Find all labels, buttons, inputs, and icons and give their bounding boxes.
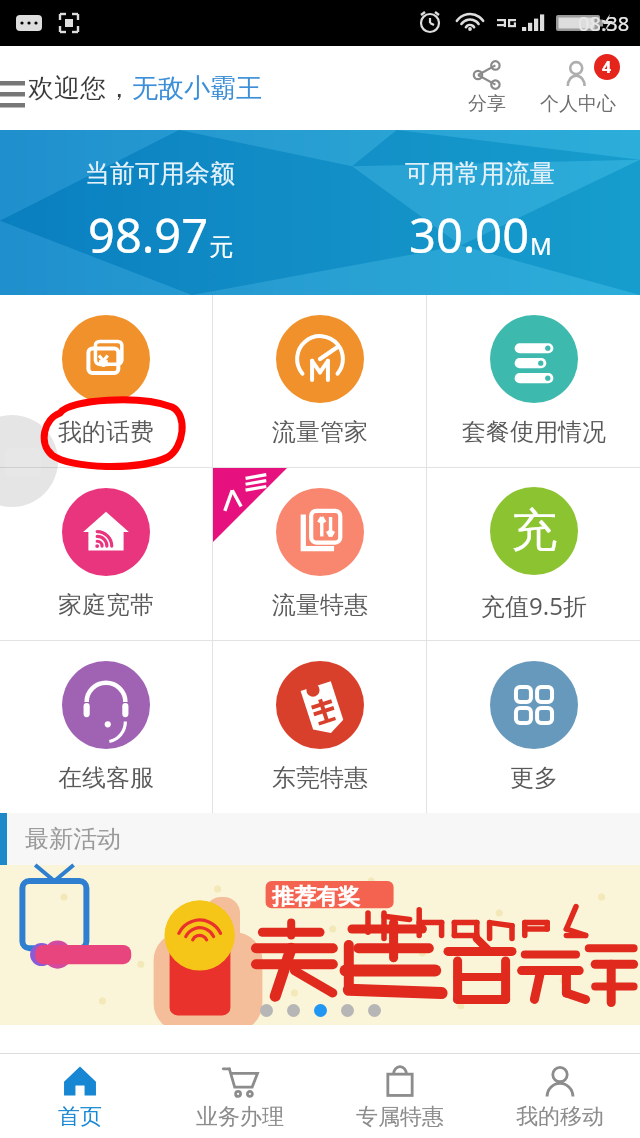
staticText: 30.00	[409, 203, 530, 267]
staticText: 在线客服	[58, 763, 154, 793]
button[interactable]: 我的移动	[480, 1054, 640, 1138]
staticText: 08:38	[578, 10, 630, 37]
staticText: 流量管家	[272, 417, 368, 447]
staticText: 最新活动	[25, 824, 121, 854]
staticText: 可用常用流量	[405, 158, 555, 189]
staticText: 首页	[58, 1103, 102, 1131]
staticText: 充值9.5折	[481, 589, 587, 622]
button[interactable]: 分享	[444, 60, 530, 116]
staticText: 无敌小霸王	[132, 72, 262, 105]
button[interactable]: 家庭宽带	[0, 468, 212, 640]
staticText: 我的移动	[516, 1103, 604, 1131]
button[interactable]: 业务办理	[160, 1054, 320, 1138]
button[interactable]: 推荐有奖	[0, 865, 640, 1025]
button[interactable]: 更多	[427, 641, 640, 813]
staticText: 业务办理	[196, 1103, 284, 1131]
button[interactable]: 专属特惠	[320, 1054, 480, 1138]
button[interactable]: 可用常用流量	[320, 130, 640, 295]
button[interactable]: 充	[427, 468, 640, 640]
staticText: 个人中心	[540, 92, 616, 116]
staticText: 家庭宽带	[58, 590, 154, 620]
button[interactable]: 流量管家	[213, 295, 426, 467]
button[interactable]: Menu	[0, 68, 32, 108]
staticText: 东莞特惠	[272, 763, 368, 793]
staticText: 当前可用余额	[85, 158, 235, 189]
staticText: 推荐有奖	[272, 883, 360, 911]
button[interactable]: 在线客服	[0, 641, 212, 813]
button[interactable]: 我的话费	[0, 295, 212, 467]
button[interactable]: 当前可用余额	[0, 130, 320, 295]
staticText: 分享	[468, 92, 506, 116]
button[interactable]: 东莞特惠	[213, 641, 426, 813]
button[interactable]: 套餐使用情况	[427, 295, 640, 467]
staticText: 4	[602, 56, 612, 78]
staticText: M	[530, 229, 552, 262]
staticText: 98.97	[88, 203, 209, 267]
button[interactable]: 个人中心	[530, 60, 626, 116]
staticText: 专属特惠	[356, 1103, 444, 1131]
staticText: 更多	[510, 763, 558, 793]
staticText: 流量特惠	[272, 590, 368, 620]
staticText: 元	[209, 232, 233, 262]
staticText: 我的话费	[58, 417, 154, 447]
staticText: 充	[511, 502, 557, 560]
button[interactable]: 流量特惠	[213, 468, 426, 640]
button[interactable]: 首页	[0, 1054, 160, 1138]
staticText: 套餐使用情况	[462, 417, 606, 447]
staticText: 欢迎您，	[28, 72, 132, 105]
